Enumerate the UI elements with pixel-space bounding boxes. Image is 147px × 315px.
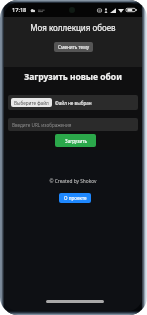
staticText: Загрузить новые обои <box>4 71 142 83</box>
button[interactable]: Загрузить <box>55 134 96 147</box>
other: Wi-Fi <box>118 8 124 13</box>
other: Signal <box>110 8 116 13</box>
staticText: 17:18 <box>12 6 27 14</box>
staticText: © Created by Shokov <box>4 178 142 185</box>
staticText: Сменить тему <box>58 44 89 50</box>
button[interactable]: Сменить тему <box>54 42 93 52</box>
other: Account <box>104 8 108 13</box>
staticText: Моя коллекция обоев <box>4 22 142 33</box>
button[interactable]: Введите URL изображения <box>8 118 138 131</box>
staticText: Введите URL изображения <box>12 122 72 128</box>
staticText: Файл не выбран <box>55 100 92 106</box>
staticText: Выберите файл <box>14 100 49 106</box>
other: Notification <box>97 8 102 13</box>
other: Battery <box>126 7 137 13</box>
staticText: Загрузить <box>65 138 87 144</box>
other: Cloud <box>30 8 36 13</box>
button[interactable]: О проекте <box>59 193 91 203</box>
button[interactable]: Выберите файл <box>8 95 138 110</box>
staticText: О проекте <box>64 195 87 201</box>
